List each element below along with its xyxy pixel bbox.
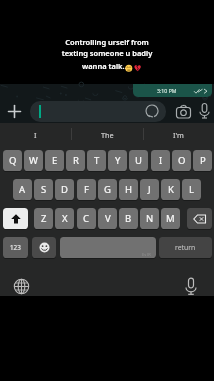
button[interactable]: J [140,179,159,200]
staticText: R [73,154,79,167]
button[interactable]: L [182,179,201,200]
staticText: wanna talk.. [82,61,127,71]
staticText: P [200,154,206,167]
button[interactable] [3,208,28,229]
button[interactable]: I [151,150,170,171]
button[interactable] [13,278,30,295]
button[interactable]: Y [108,150,127,171]
staticText: A [19,183,26,196]
button[interactable]: W [24,150,43,171]
staticText: U [135,154,142,167]
button[interactable]: 123 [3,237,28,258]
staticText: W [29,154,38,167]
staticText: L [189,183,194,196]
staticText: M [166,212,175,225]
staticText: I'm [173,130,184,140]
staticText: Controlling urself from texting someone … [0,37,214,58]
button[interactable]: F [77,179,96,200]
button[interactable]: K [161,179,180,200]
staticText: F [84,183,89,196]
staticText: T [94,154,100,167]
button[interactable] [5,102,24,121]
button[interactable]: V [98,208,117,229]
button[interactable] [175,104,192,119]
button[interactable] [32,237,56,258]
staticText: X [62,212,68,225]
staticText: O [178,154,186,167]
staticText: G [104,183,111,196]
button[interactable]: T [87,150,106,171]
button[interactable]: G [98,179,117,200]
staticText: V [105,212,111,225]
button[interactable]: X [55,208,74,229]
button[interactable]: I'm [143,127,214,143]
button[interactable]: C [77,208,96,229]
staticText: The [101,130,114,140]
staticText: 3:10 PM [157,87,177,94]
staticText: B [125,212,132,225]
button[interactable]: 3:10 PM [133,84,212,97]
button[interactable]: The [72,127,143,143]
staticText: 123 [10,243,21,252]
button[interactable]: N [140,208,159,229]
button[interactable]: U [129,150,148,171]
staticText: I [159,154,163,167]
button[interactable]: D [55,179,74,200]
staticText: return [175,243,196,252]
button[interactable]: I [0,127,71,143]
button[interactable]: Z [34,208,53,229]
staticText: C [83,212,90,225]
staticText: Q [9,154,17,167]
staticText: K [168,183,174,196]
staticText: E [52,154,58,167]
button[interactable]: A [13,179,32,200]
button[interactable] [30,101,166,122]
button[interactable]: O [172,150,191,171]
staticText: J [148,183,151,196]
staticText: Y [115,154,121,167]
button[interactable]: H [119,179,138,200]
button[interactable]: P [193,150,212,171]
button[interactable] [184,277,198,296]
button[interactable]: R [66,150,85,171]
staticText: Z [41,212,47,225]
button[interactable]: Es lR [60,237,156,258]
staticText: D [61,183,68,196]
staticText: H [125,183,133,196]
staticText: Es lR [142,252,151,257]
button[interactable]: S [34,179,53,200]
staticText: N [146,212,154,225]
button[interactable]: Q [3,150,22,171]
button[interactable]: return [159,237,212,258]
button[interactable]: B [119,208,138,229]
staticText: S [41,183,47,196]
staticText: I [34,130,37,140]
button[interactable] [198,102,211,120]
button[interactable]: M [161,208,180,229]
button[interactable]: E [45,150,64,171]
button[interactable] [187,208,212,229]
